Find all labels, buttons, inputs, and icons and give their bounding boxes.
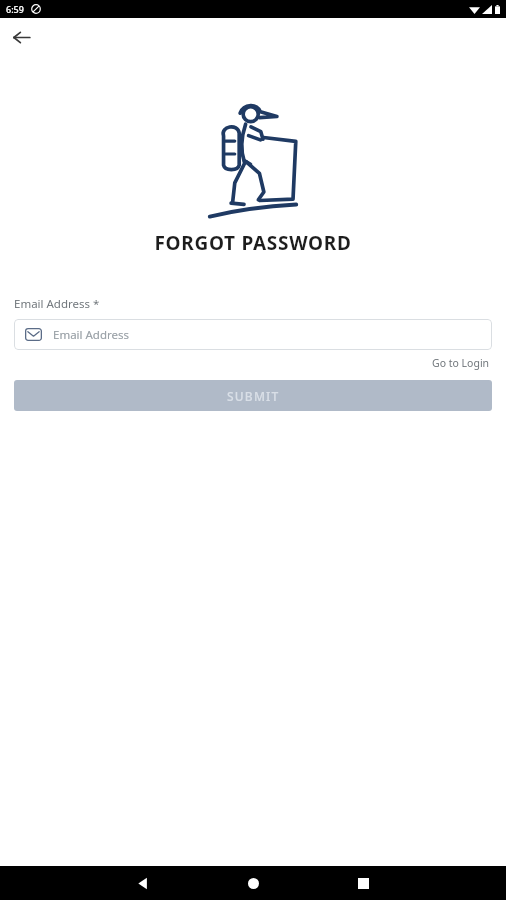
button[interactable]: Recent apps — [308, 866, 418, 900]
button[interactable]: Home — [198, 866, 308, 900]
button[interactable]: Back — [5, 21, 38, 54]
button[interactable]: SUBMIT — [14, 380, 492, 411]
staticText: FORGOT PASSWORD — [0, 230, 506, 256]
staticText: SUBMIT — [227, 388, 280, 404]
staticText: Email Address — [53, 327, 130, 343]
button[interactable]: Back — [88, 866, 198, 900]
button[interactable]: Go to Login — [430, 354, 492, 372]
button[interactable]: Email Address — [14, 319, 492, 350]
staticText: Email Address * — [14, 296, 100, 312]
staticText: 6:59 — [6, 3, 24, 15]
